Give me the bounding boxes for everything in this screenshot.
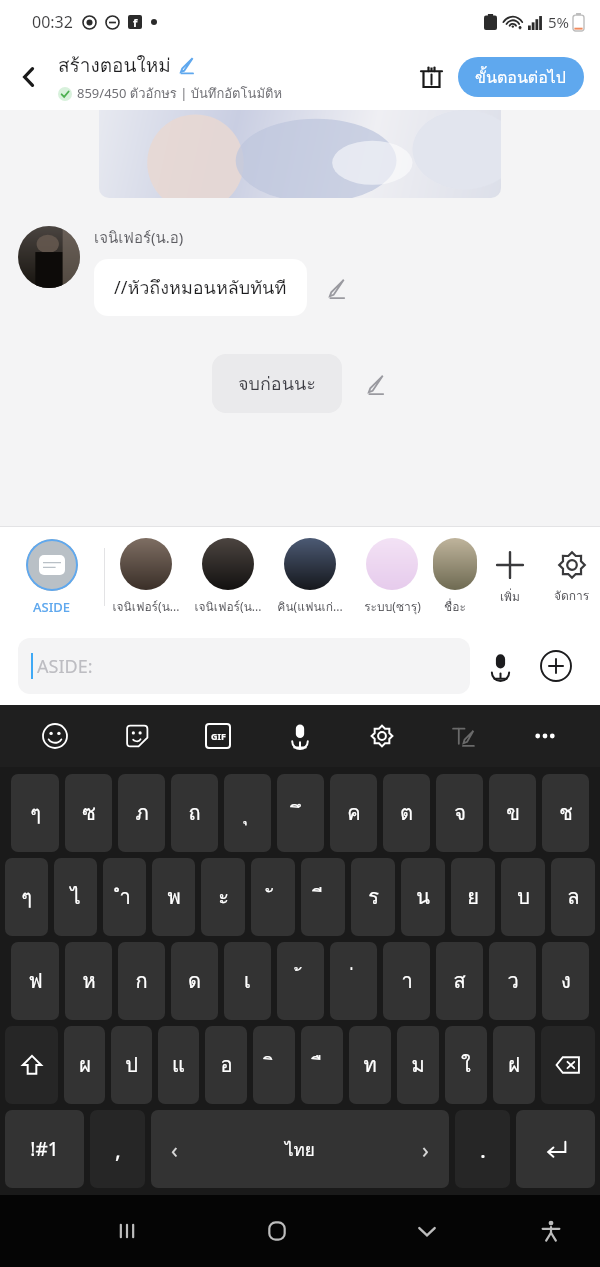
button[interactable]: ง (542, 942, 589, 1020)
button[interactable]: ป (111, 1026, 152, 1104)
button[interactable]: Hide keyboard (396, 1200, 458, 1262)
button[interactable]: Delete (404, 50, 458, 104)
button[interactable]: Edit title (177, 55, 197, 75)
button[interactable]: ึ (277, 774, 324, 852)
button[interactable] (99, 110, 501, 198)
button[interactable]: ๆ (11, 774, 59, 852)
button[interactable]: ‹ (151, 1110, 449, 1188)
button[interactable]: ั (251, 858, 295, 936)
button[interactable]: ภ (118, 774, 165, 852)
button[interactable]: คิน(แฟนเก่... (269, 527, 351, 627)
button[interactable]: ก (118, 942, 165, 1020)
button[interactable]: ะ (201, 858, 245, 936)
button[interactable]: า (383, 942, 430, 1020)
staticText: ะ (218, 881, 229, 913)
button[interactable]: Shift (5, 1026, 58, 1104)
button[interactable]: ท (349, 1026, 391, 1104)
button[interactable]: ำ (103, 858, 146, 936)
staticText: ASIDE: (37, 654, 93, 679)
button[interactable]: Enter (516, 1110, 595, 1188)
button[interactable]: ด (171, 942, 218, 1020)
button[interactable]: ต (383, 774, 430, 852)
staticText: ห (82, 965, 96, 997)
button[interactable]: เจนิเฟอร์(น... (187, 527, 269, 627)
staticText: ด (188, 965, 201, 997)
button[interactable]: Character avatar (18, 226, 80, 288)
button[interactable]: ข (489, 774, 536, 852)
button[interactable]: Recents (96, 1200, 158, 1262)
button[interactable]: GIF (191, 709, 245, 763)
button[interactable]: ระบบ(ซารุ) (351, 527, 433, 627)
button[interactable]: ุ (224, 774, 271, 852)
button[interactable]: Back (0, 44, 58, 110)
button[interactable]: ถ (171, 774, 218, 852)
staticText: ๆ (30, 797, 41, 829)
staticText: ไ (70, 881, 81, 913)
button[interactable]: Keyboard settings (355, 709, 409, 763)
button[interactable]: Edit narration (364, 372, 388, 396)
button[interactable]: Voice input (470, 636, 530, 696)
button[interactable]: ย (451, 858, 495, 936)
button[interactable]: Accessibility (524, 1204, 578, 1258)
button[interactable]: //หัวถึงหมอนหลับทันที (94, 259, 307, 316)
button[interactable]: เพิ่ม (477, 527, 543, 627)
button[interactable]: ชื่อะ (433, 527, 477, 627)
button[interactable]: จ (436, 774, 483, 852)
button[interactable]: ใ (445, 1026, 487, 1104)
button[interactable]: ซ (65, 774, 112, 852)
button[interactable]: . (455, 1110, 510, 1188)
staticText: ง (561, 965, 571, 997)
button[interactable]: ร (351, 858, 395, 936)
button[interactable]: ค (330, 774, 377, 852)
button[interactable]: ฟ (11, 942, 59, 1020)
button[interactable]: บ (501, 858, 545, 936)
button[interactable]: Add (530, 640, 582, 692)
staticText: ภ (135, 797, 149, 829)
button[interactable]: เ (224, 942, 271, 1020)
button[interactable]: !#1 (5, 1110, 84, 1188)
staticText: เพิ่ม (500, 587, 520, 606)
button[interactable]: Stickers (110, 709, 164, 763)
button[interactable]: ล (551, 858, 595, 936)
button[interactable]: Edit message (325, 276, 349, 300)
button[interactable]: Handwriting (437, 709, 491, 763)
button[interactable]: อ (205, 1026, 247, 1104)
button[interactable]: น (401, 858, 445, 936)
button[interactable]: ขั้นตอนต่อไป (458, 57, 584, 97)
button[interactable]: Emoji (28, 709, 82, 763)
button[interactable]: ไ (54, 858, 97, 936)
button[interactable]: ี (301, 858, 345, 936)
button[interactable]: พ (152, 858, 195, 936)
button[interactable]: ิ (253, 1026, 295, 1104)
button[interactable]: จัดการ (543, 527, 600, 627)
button[interactable]: ม (397, 1026, 439, 1104)
button[interactable]: ๆ (5, 858, 48, 936)
button[interactable]: ื (301, 1026, 343, 1104)
button[interactable]: , (90, 1110, 145, 1188)
button[interactable]: ASIDE (0, 527, 104, 627)
staticText: ถ (188, 797, 201, 829)
staticText: เ (244, 965, 251, 997)
staticText: ซ (82, 797, 96, 829)
button[interactable]: ว (489, 942, 536, 1020)
button[interactable]: แ (158, 1026, 199, 1104)
button[interactable]: Voice typing (273, 709, 327, 763)
button[interactable]: Backspace (541, 1026, 595, 1104)
button[interactable]: More options (518, 709, 572, 763)
staticText: เจนิเฟอร์(น.อ) (94, 226, 184, 250)
button[interactable]: ้ (277, 942, 324, 1020)
button[interactable]: ผ (64, 1026, 105, 1104)
button[interactable]: ฝ (493, 1026, 535, 1104)
button[interactable]: จบก่อนนะ (212, 354, 342, 413)
staticText: ร (368, 881, 379, 913)
staticText: ASIDE (33, 598, 71, 616)
button[interactable]: ASIDE: (18, 638, 470, 694)
button[interactable]: Home (246, 1200, 308, 1262)
staticText: คิน(แฟนเก่... (277, 597, 343, 616)
button[interactable]: ส (436, 942, 483, 1020)
staticText: 5% (548, 12, 570, 32)
button[interactable]: ช (542, 774, 589, 852)
button[interactable]: ่ (330, 942, 377, 1020)
button[interactable]: ห (65, 942, 112, 1020)
button[interactable]: เจนิเฟอร์(น... (105, 527, 187, 627)
